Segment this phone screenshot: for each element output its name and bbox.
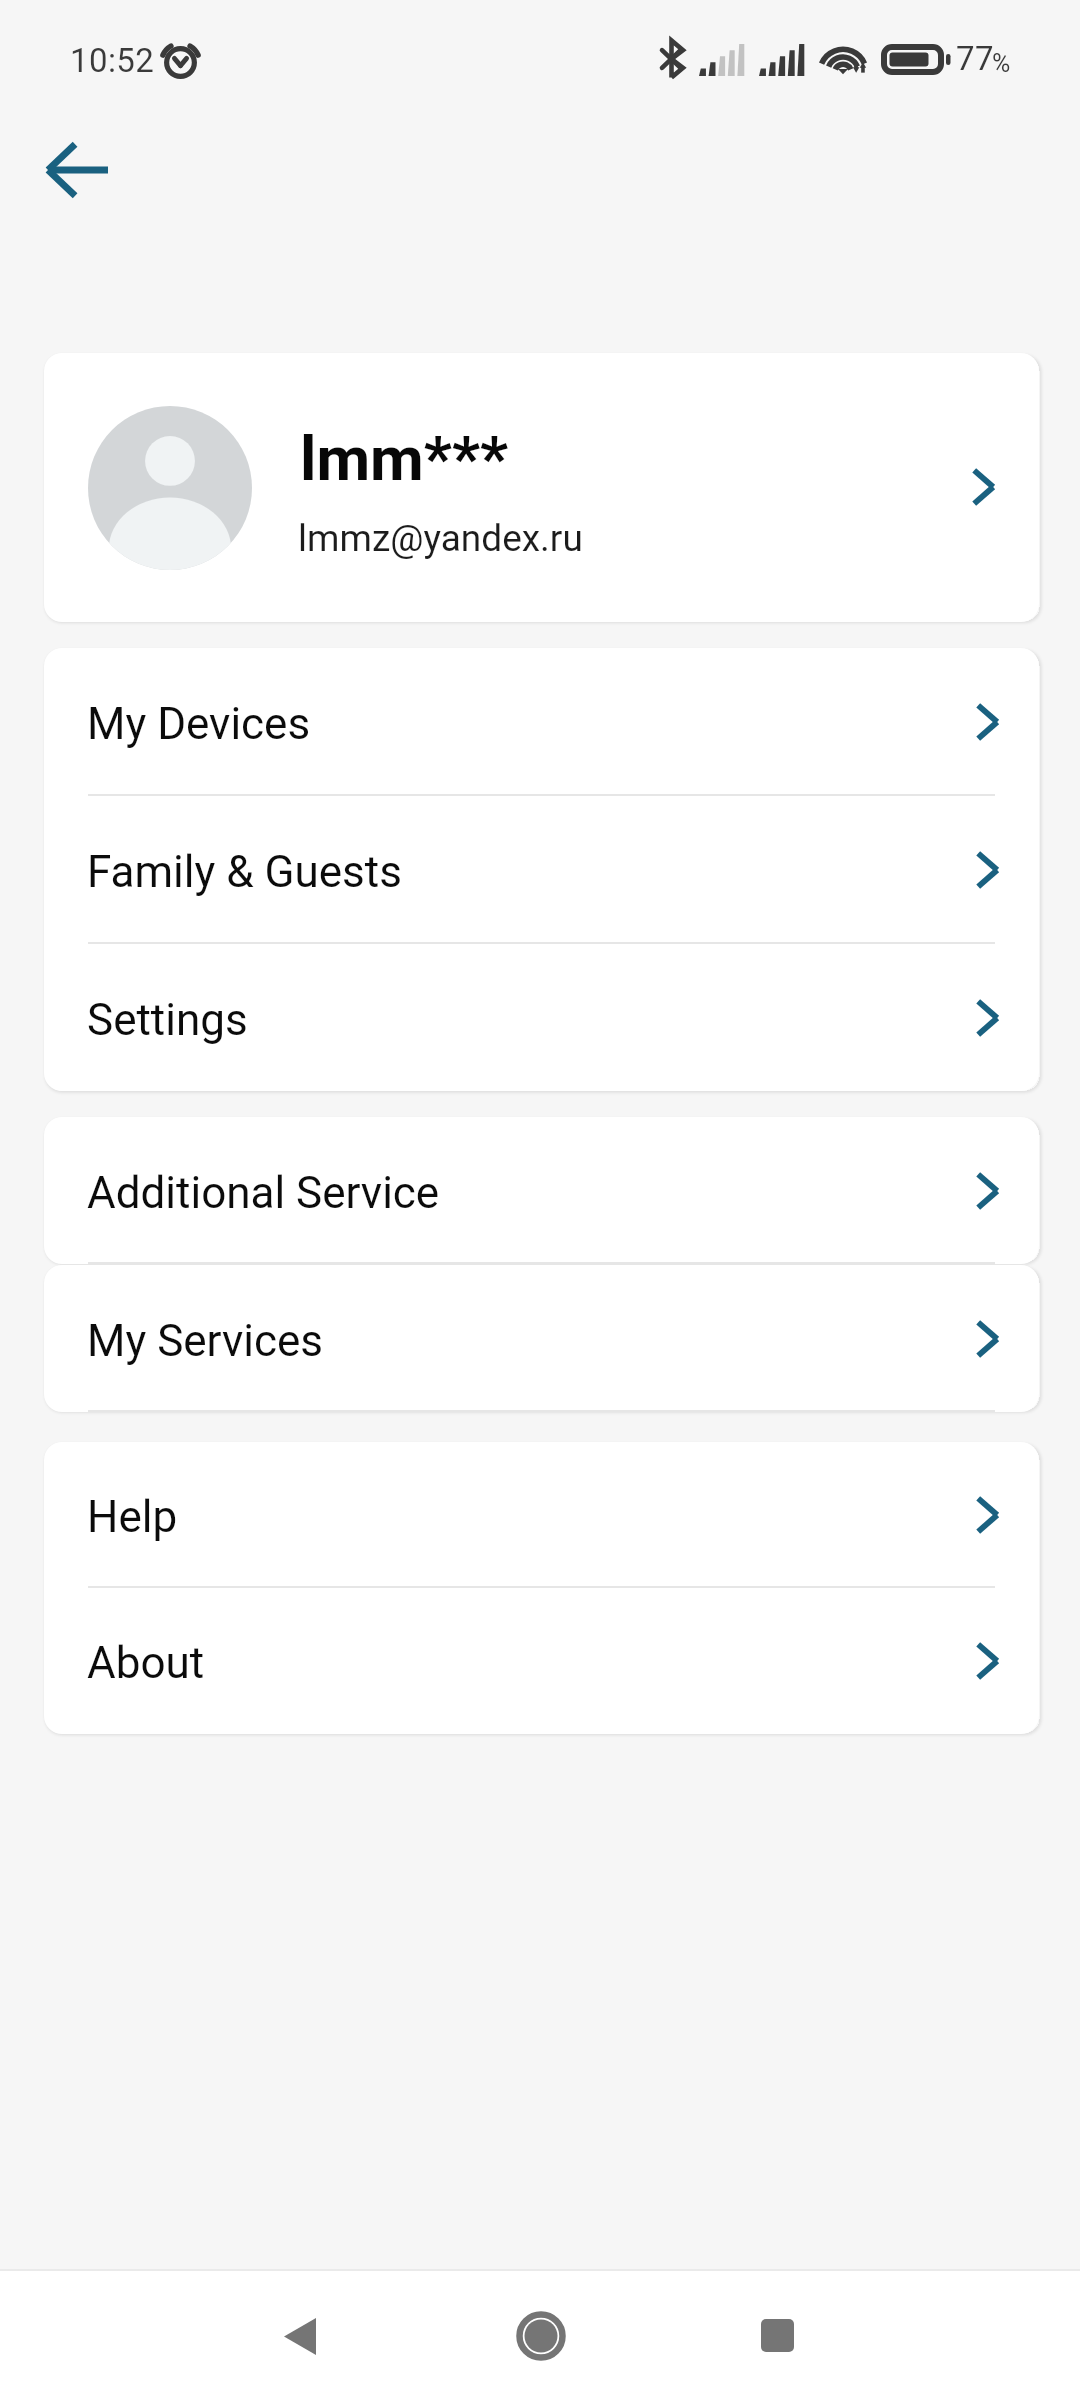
- button[interactable]: My Devices: [44, 648, 1039, 796]
- staticText: 10:52: [70, 41, 155, 80]
- button[interactable]: Family & Guests: [44, 796, 1039, 944]
- button[interactable]: Home: [476, 2271, 606, 2400]
- button[interactable]: Back: [235, 2271, 365, 2400]
- button[interactable]: Help: [44, 1442, 1039, 1588]
- button[interactable]: About: [44, 1588, 1039, 1734]
- staticText: Settings: [87, 994, 248, 1046]
- staticText: Help: [87, 1491, 178, 1543]
- button[interactable]: Back: [29, 122, 125, 218]
- staticText: About: [87, 1637, 205, 1689]
- staticText: My Services: [87, 1315, 323, 1367]
- button[interactable]: Recent apps: [712, 2270, 842, 2400]
- staticText: %: [992, 49, 1011, 78]
- button[interactable]: My Services: [44, 1265, 1039, 1412]
- staticText: Family & Guests: [87, 846, 402, 898]
- button[interactable]: lmm***: [44, 353, 1039, 622]
- staticText: lmm***: [300, 422, 509, 495]
- button[interactable]: Additional Service: [44, 1117, 1039, 1264]
- staticText: Additional Service: [87, 1167, 440, 1219]
- button[interactable]: Settings: [44, 944, 1039, 1091]
- staticText: My Devices: [87, 698, 311, 750]
- staticText: lmmz@yandex.ru: [298, 517, 583, 560]
- staticText: 77: [956, 39, 994, 78]
